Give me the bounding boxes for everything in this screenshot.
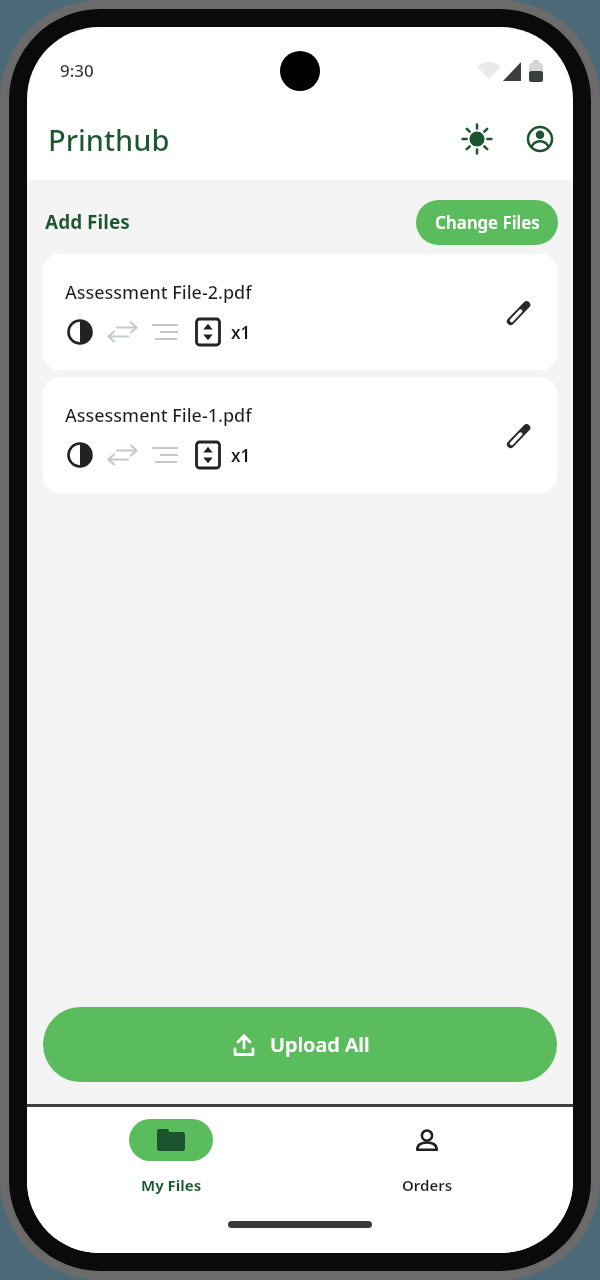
button[interactable] (87, 1112, 257, 1204)
staticText: Assessment File-1.pdf (65, 403, 252, 428)
staticText: Printhub (48, 120, 170, 159)
staticText: 9:30 (60, 59, 94, 82)
button[interactable]: Assessment File-2.pdf (43, 254, 557, 370)
staticText: x1 (231, 321, 251, 344)
button[interactable] (507, 424, 531, 448)
staticText: Upload All (270, 1031, 370, 1058)
staticText: Orders (402, 1175, 453, 1195)
button[interactable]: Upload All (43, 1007, 557, 1082)
staticText: Assessment File-2.pdf (65, 280, 252, 305)
button[interactable] (523, 122, 557, 156)
staticText: Add Files (45, 209, 130, 235)
button[interactable]: Change Files (416, 200, 558, 245)
staticText: My Files (141, 1175, 202, 1195)
button[interactable] (357, 1112, 497, 1204)
button[interactable] (460, 122, 494, 156)
button[interactable] (507, 301, 531, 325)
staticText: x1 (231, 444, 251, 467)
button[interactable]: Assessment File-1.pdf (43, 377, 557, 493)
staticText: Change Files (435, 211, 540, 234)
